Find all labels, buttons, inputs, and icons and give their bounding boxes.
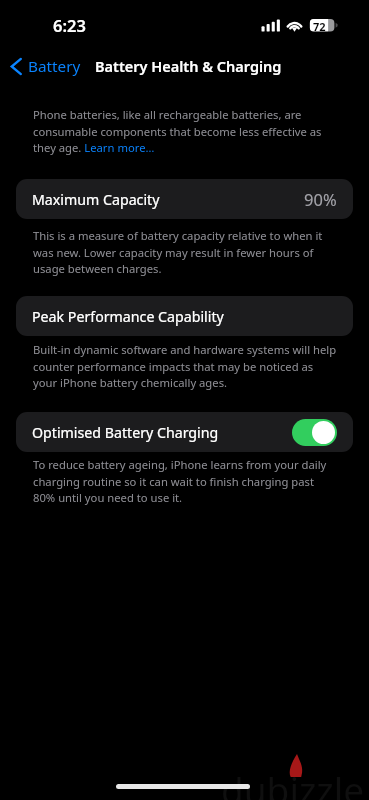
staticText: Peak Performance Capability: [32, 307, 224, 326]
staticText: Maximum Capacity: [32, 190, 160, 209]
staticText: 90%: [304, 188, 337, 210]
button[interactable]: Peak Performance Capability: [16, 296, 353, 336]
staticText: dubizzle: [221, 764, 365, 800]
staticText: This is a measure of battery capacity re…: [33, 228, 336, 276]
staticText: Battery: [28, 56, 81, 77]
button[interactable]: Maximum Capacity: [16, 179, 353, 219]
staticText: 72: [313, 19, 326, 34]
staticText: Optimised Battery Charging: [32, 423, 219, 442]
button[interactable]: Optimised Battery Charging toggle: [292, 419, 337, 446]
staticText: Battery Health & Charging: [95, 56, 282, 76]
staticText: 6:23: [53, 14, 86, 36]
button[interactable]: Back to Battery: [9, 56, 81, 77]
button[interactable]: Optimised Battery Charging: [16, 412, 353, 452]
staticText: Built-in dynamic software and hardware s…: [33, 342, 337, 390]
staticText: To reduce battery ageing, iPhone learns …: [33, 457, 336, 505]
staticText: Phone batteries, like all rechargeable b…: [33, 107, 336, 155]
